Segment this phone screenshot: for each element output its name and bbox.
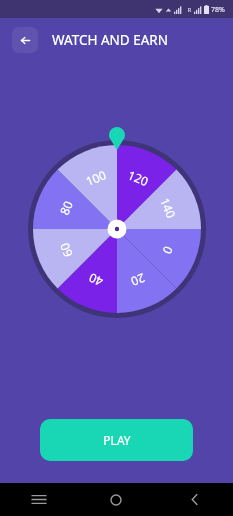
button[interactable]: Back bbox=[155, 483, 233, 516]
button[interactable]: Recent apps bbox=[0, 483, 77, 516]
button[interactable]: Back bbox=[12, 27, 38, 53]
button[interactable]: Home bbox=[77, 483, 155, 516]
button[interactable]: Spin wheel bbox=[24, 126, 210, 316]
button[interactable] bbox=[40, 419, 193, 461]
